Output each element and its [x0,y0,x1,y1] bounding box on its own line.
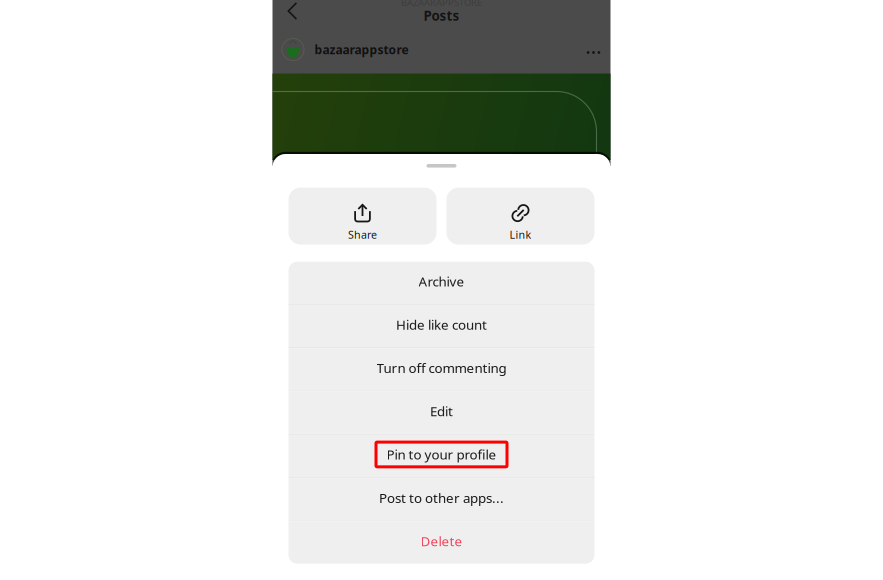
staticText: Pin to your profile [386,446,496,463]
button[interactable]: Back [272,0,312,24]
staticText: Archive [418,272,464,290]
button[interactable]: Edit [288,391,594,434]
staticText: Posts [423,7,459,24]
staticText: bazaarappstore [314,41,408,57]
staticText: Post to other apps... [379,489,504,507]
button[interactable]: Link [446,188,594,245]
button[interactable]: Share [288,188,436,245]
staticText: Turn off commenting [376,359,506,377]
staticText: BAZAARAPPSTORE [401,0,482,9]
staticText: Hide like count [396,316,487,333]
button[interactable]: Hide like count [288,305,594,347]
staticText: Delete [420,532,462,550]
button[interactable]: Turn off commenting [288,348,594,390]
button[interactable]: Archive [288,262,594,304]
button[interactable]: Pin to your profile [288,435,594,477]
button[interactable]: Delete [288,521,594,564]
staticText: Link [509,228,531,242]
button[interactable]: Post to other apps... [288,478,594,520]
button[interactable]: More options [578,40,608,64]
staticText: Share [348,228,377,242]
staticText: Edit [430,402,453,420]
